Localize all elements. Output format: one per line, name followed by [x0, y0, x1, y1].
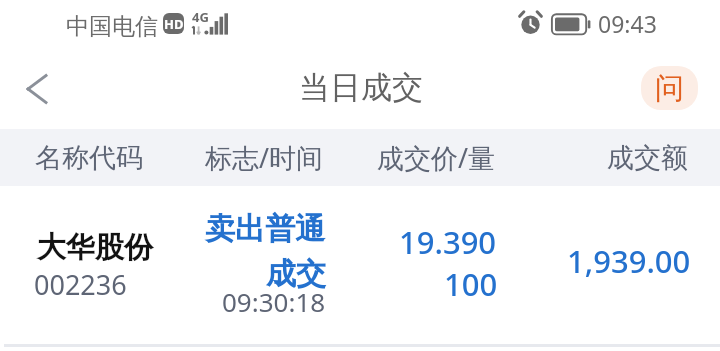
staticText: 大华股份 — [37, 229, 153, 266]
staticText: 成交价/量 — [323, 139, 495, 176]
staticText: 名称代码 — [35, 141, 190, 175]
button[interactable]: Back — [6, 48, 68, 129]
button[interactable]: 大华股份 — [0, 185, 720, 345]
button[interactable]: Help — [641, 66, 698, 110]
staticText: 成交 — [266, 255, 326, 293]
staticText: HD — [164, 15, 184, 33]
staticText: 当日成交 — [299, 68, 423, 107]
staticText: 09:30:18 — [222, 284, 326, 319]
staticText: 问 — [655, 70, 684, 107]
staticText: 19.390 — [399, 221, 497, 263]
staticText: 100 — [444, 263, 498, 305]
staticText: 1,939.00 — [567, 240, 691, 282]
staticText: 4G — [192, 8, 209, 26]
staticText: 09:43 — [598, 8, 657, 39]
staticText: 卖出普通 — [205, 210, 325, 248]
staticText: 中国电信 — [66, 12, 158, 41]
staticText: 成交额 — [495, 141, 688, 175]
staticText: 标志/时间 — [190, 139, 323, 176]
staticText: 002236 — [34, 266, 127, 303]
